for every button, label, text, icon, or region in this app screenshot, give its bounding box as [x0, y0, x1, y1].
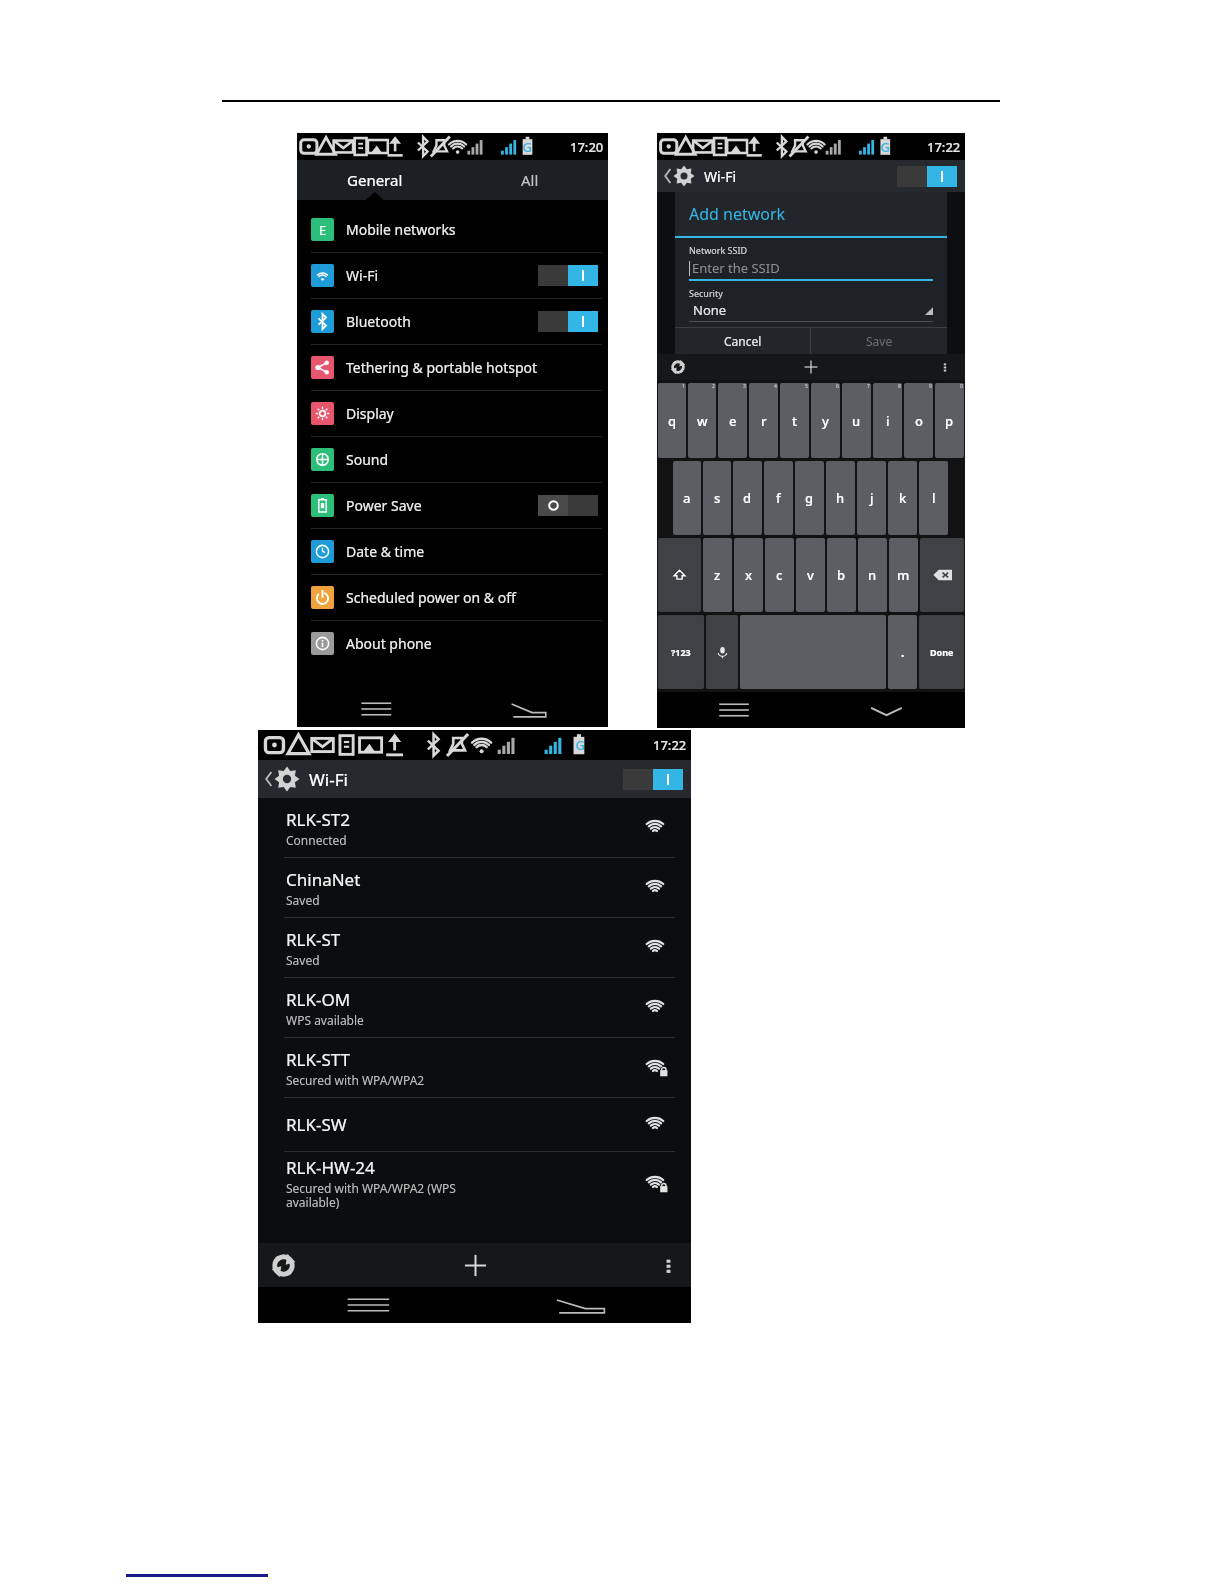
- button[interactable]: Save: [811, 328, 947, 354]
- button[interactable]: i: [873, 383, 902, 458]
- button[interactable]: Toggle: [538, 311, 598, 332]
- staticText: Secured with WPA/WPA2: [286, 1072, 425, 1088]
- staticText: 17:22: [927, 138, 961, 156]
- staticText: RLK-ST: [286, 928, 341, 951]
- button[interactable]: RLK-STT: [258, 1038, 691, 1097]
- staticText: c: [776, 566, 783, 584]
- button[interactable]: Add network: [759, 354, 862, 380]
- button[interactable]: More options: [547, 1243, 691, 1287]
- button[interactable]: r: [749, 383, 778, 458]
- button[interactable]: a: [673, 461, 701, 535]
- button[interactable]: Date & time: [297, 529, 608, 574]
- staticText: f: [776, 489, 781, 507]
- button[interactable]: Symbols: [658, 615, 704, 689]
- button[interactable]: f: [764, 461, 793, 535]
- button[interactable]: Toggle: [538, 495, 598, 516]
- button[interactable]: None: [689, 301, 933, 319]
- button[interactable]: d: [733, 461, 762, 535]
- button[interactable]: p: [935, 383, 964, 458]
- staticText: Scheduled power on & off: [346, 588, 598, 607]
- button[interactable]: Scheduled power on & off: [297, 575, 608, 620]
- button[interactable]: v: [796, 538, 825, 612]
- staticText: Done: [930, 646, 954, 658]
- button[interactable]: Sound: [297, 437, 608, 482]
- button[interactable]: Scan: [657, 354, 759, 380]
- button[interactable]: k: [888, 461, 917, 535]
- staticText: 8: [898, 383, 901, 390]
- button[interactable]: Done: [919, 615, 964, 689]
- button[interactable]: About phone: [297, 621, 608, 666]
- button[interactable]: Bluetooth: [297, 299, 608, 344]
- button[interactable]: RLK-SW: [258, 1098, 691, 1151]
- button[interactable]: Scan: [258, 1243, 403, 1287]
- button[interactable]: Add network: [403, 1243, 547, 1287]
- staticText: 9: [929, 383, 932, 390]
- staticText: s: [714, 489, 721, 507]
- staticText: o: [915, 412, 923, 430]
- button[interactable]: More options: [862, 354, 965, 380]
- button[interactable]: t: [780, 383, 809, 458]
- button[interactable]: Back: [662, 165, 697, 187]
- button[interactable]: Toggle: [538, 265, 598, 286]
- button[interactable]: Wi-Fi: [297, 253, 608, 298]
- button[interactable]: Tethering & portable hotspot: [297, 345, 608, 390]
- button[interactable]: o: [904, 383, 933, 458]
- button[interactable]: h: [826, 461, 855, 535]
- staticText: w: [697, 412, 708, 430]
- button[interactable]: Display: [297, 391, 608, 436]
- staticText: RLK-HW-24: [286, 1156, 375, 1179]
- button[interactable]: Toggle: [897, 166, 957, 187]
- staticText: r: [761, 412, 767, 430]
- button[interactable]: All: [452, 160, 608, 200]
- button[interactable]: x: [734, 538, 763, 612]
- staticText: About phone: [346, 634, 598, 653]
- button[interactable]: l: [919, 461, 948, 535]
- button[interactable]: RLK-ST2: [258, 798, 691, 857]
- button[interactable]: n: [858, 538, 887, 612]
- staticText: Sound: [346, 450, 598, 469]
- button[interactable]: w: [688, 383, 716, 458]
- staticText: Secured with WPA/WPA2 (WPS available): [286, 1180, 456, 1211]
- staticText: Network SSID: [689, 244, 748, 256]
- button[interactable]: b: [827, 538, 856, 612]
- staticText: Wi-Fi: [309, 768, 623, 791]
- staticText: Bluetooth: [346, 312, 538, 331]
- button[interactable]: Toggle: [623, 769, 683, 790]
- button[interactable]: q: [658, 383, 686, 458]
- button[interactable]: Shift: [658, 538, 701, 612]
- staticText: None: [693, 301, 727, 319]
- button[interactable]: ChinaNet: [258, 858, 691, 917]
- staticText: 1: [682, 383, 685, 390]
- button[interactable]: s: [703, 461, 731, 535]
- button[interactable]: Cancel: [675, 328, 810, 354]
- button[interactable]: Back: [263, 766, 302, 792]
- staticText: WPS available: [286, 1012, 364, 1028]
- button[interactable]: Period: [888, 615, 917, 689]
- button[interactable]: RLK-HW-24: [258, 1152, 691, 1215]
- button[interactable]: RLK-OM: [258, 978, 691, 1037]
- button[interactable]: Delete: [920, 538, 964, 612]
- button[interactable]: E: [297, 207, 608, 252]
- button[interactable]: RLK-ST: [258, 918, 691, 977]
- button[interactable]: u: [842, 383, 871, 458]
- staticText: l: [932, 489, 936, 507]
- staticText: Cancel: [724, 333, 762, 349]
- button[interactable]: e: [718, 383, 747, 458]
- button[interactable]: Power Save: [297, 483, 608, 528]
- button[interactable]: Voice input: [706, 615, 738, 689]
- staticText: n: [868, 566, 877, 584]
- button[interactable]: General: [297, 160, 452, 200]
- button[interactable]: z: [703, 538, 732, 612]
- button[interactable]: g: [795, 461, 824, 535]
- staticText: 17:20: [570, 138, 604, 156]
- staticText: Add network: [689, 203, 786, 225]
- button[interactable]: y: [811, 383, 840, 458]
- staticText: Wi-Fi: [704, 167, 897, 186]
- staticText: RLK-OM: [286, 988, 351, 1011]
- button[interactable]: c: [765, 538, 794, 612]
- button[interactable]: m: [889, 538, 918, 612]
- button[interactable]: j: [857, 461, 886, 535]
- staticText: Saved: [286, 892, 320, 908]
- staticText: Connected: [286, 832, 347, 848]
